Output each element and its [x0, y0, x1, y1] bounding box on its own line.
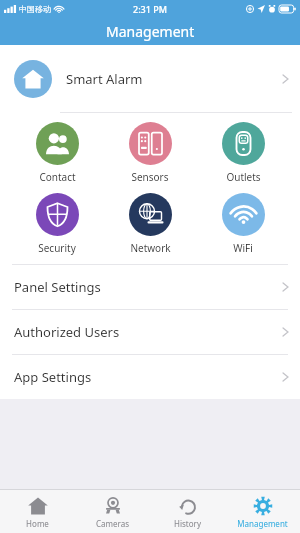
button[interactable]: Sensors — [108, 122, 192, 184]
staticText: Management — [106, 22, 195, 41]
staticText: WiFi — [233, 241, 253, 255]
button[interactable]: Smart Alarm — [0, 45, 300, 112]
button[interactable]: Outlets — [201, 122, 285, 184]
button[interactable]: Panel Settings — [0, 265, 300, 309]
staticText: Network — [130, 241, 171, 255]
button[interactable]: History — [150, 492, 225, 532]
staticText: Authorized Users — [14, 323, 120, 341]
button[interactable]: Management — [225, 492, 300, 532]
staticText: 中国移动 — [19, 4, 51, 14]
staticText: Security — [38, 241, 76, 255]
button[interactable]: Authorized Users — [0, 310, 300, 354]
button[interactable]: Home — [0, 492, 75, 532]
button[interactable]: Contact — [15, 122, 99, 184]
staticText: History — [174, 518, 201, 529]
staticText: Home — [26, 518, 49, 529]
button[interactable]: Cameras — [75, 492, 150, 532]
staticText: 2:31 PM — [133, 3, 167, 15]
staticText: App Settings — [14, 368, 92, 386]
staticText: Smart Alarm — [66, 70, 143, 88]
staticText: Management — [237, 518, 288, 529]
button[interactable]: Network — [108, 193, 192, 255]
button[interactable]: Security — [15, 193, 99, 255]
button[interactable]: WiFi — [201, 193, 285, 255]
staticText: Cameras — [96, 518, 129, 529]
staticText: Panel Settings — [14, 278, 101, 296]
staticText: Outlets — [226, 170, 261, 184]
staticText: Sensors — [131, 170, 169, 184]
button[interactable]: App Settings — [0, 355, 300, 399]
staticText: Contact — [39, 170, 76, 184]
